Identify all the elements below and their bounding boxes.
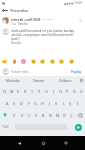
staticText: M [56,113,60,118]
staticText: , [12,125,13,130]
staticText: R [24,89,27,94]
button[interactable]: Quick reaction [30,58,36,64]
staticText: Yanıtla [11,41,21,45]
staticText: özeti? [11,36,20,40]
button[interactable]: Quick reaction [20,58,26,64]
button[interactable]: Y [36,85,43,97]
staticText: Merhaba [6,79,20,83]
button[interactable]: Keyboard settings [78,76,85,85]
button[interactable]: Quick reaction [39,58,45,64]
button[interactable]: Paylaş [70,68,83,74]
button[interactable]: ?123 [0,121,10,133]
button[interactable]: Back [15,139,23,147]
button[interactable]: Merhaba [0,76,26,85]
staticText: Ç [70,113,73,118]
staticText: T [31,89,34,94]
staticText: S [13,101,16,106]
button[interactable]: Ğ [71,85,78,97]
staticText: 14:09 [74,1,83,5]
staticText: Tamam [33,79,45,83]
button[interactable]: L [60,97,67,109]
button[interactable]: Kullanıcı [52,76,78,85]
staticText: Ğ [73,89,76,94]
button[interactable]: M [54,109,61,121]
staticText: L [63,101,65,106]
staticText: Z [13,113,16,118]
button[interactable]: Ö [61,109,68,121]
button[interactable]: A [4,97,11,109]
staticText: matLuzeliSonuckod en çok kızılan kazılan… [11,28,76,32]
button[interactable]: V [33,109,40,121]
button[interactable]: G [32,97,39,109]
button[interactable]: X [18,109,26,121]
button[interactable]: Back [0,6,10,15]
staticText: V [35,113,38,118]
button[interactable]: Quick reaction [68,58,74,64]
button[interactable]: Quick reaction [11,58,17,64]
staticText: F [28,101,30,106]
button[interactable]: Z [10,109,18,121]
button[interactable]: Quick reaction [58,58,64,64]
staticText: K [55,101,58,106]
button[interactable]: Home [39,139,47,147]
button[interactable]: R [22,85,29,97]
button[interactable]: Send [72,121,85,133]
button[interactable]: Q [0,85,8,97]
button[interactable]: Recents [62,139,70,147]
staticText: O [59,89,62,94]
button[interactable]: Shift [0,109,10,121]
button[interactable]: N [47,109,54,121]
staticText: P [66,89,69,94]
button[interactable]: U [43,85,50,97]
button[interactable]: S [11,97,18,109]
staticText: A [6,101,9,106]
button[interactable]: J [46,97,53,109]
button[interactable]: E [15,85,22,97]
button[interactable]: İ [74,97,81,109]
staticText: X [21,113,24,118]
button[interactable]: O [57,85,64,97]
staticText: D [20,101,23,106]
button[interactable]: Ş [67,97,74,109]
staticText: W [10,89,14,94]
button[interactable]: Comma [10,121,15,133]
staticText: Yanıtla [18,22,28,26]
button[interactable]: Quick reaction [49,58,55,64]
staticText: Q [3,89,6,94]
staticText: olcülük ve paylaşın atıcı/kizliSonuthood… [11,32,74,36]
button[interactable]: K [53,97,60,109]
staticText: J [49,101,51,106]
staticText: Ş [69,101,72,106]
button[interactable]: H [39,97,46,109]
button[interactable]: Like comment [78,18,83,23]
staticText: İ [77,101,79,106]
button[interactable]: W [8,85,15,97]
button[interactable]: P [64,85,71,97]
staticText: emreali_unt9.9039 [11,17,41,21]
staticText: I [53,89,55,94]
button[interactable]: D [18,97,25,109]
staticText: Yorum ekle... [11,69,70,73]
staticText: C [28,113,31,118]
button[interactable]: B [40,109,47,121]
button[interactable]: Ü [78,85,85,97]
button[interactable]: Quick reaction [1,58,7,64]
button[interactable]: matLuzeliSonuckod en çok kızılan kazılan… [0,28,85,45]
button[interactable]: C [26,109,33,121]
staticText: N [49,113,52,118]
staticText: E [17,89,20,94]
staticText: H [41,101,44,106]
button[interactable]: F [25,97,32,109]
button[interactable]: Backspace [75,109,85,121]
button[interactable]: Tamam [26,76,52,85]
staticText: Ü [80,89,83,94]
button[interactable]: emreali_unt9.9039 [0,17,85,26]
staticText: U [45,89,48,94]
staticText: 1sa [11,22,16,26]
button[interactable]: I [50,85,57,97]
staticText: Yorumlar [10,8,29,14]
button[interactable]: T [29,85,36,97]
button[interactable]: Ç [68,109,75,121]
